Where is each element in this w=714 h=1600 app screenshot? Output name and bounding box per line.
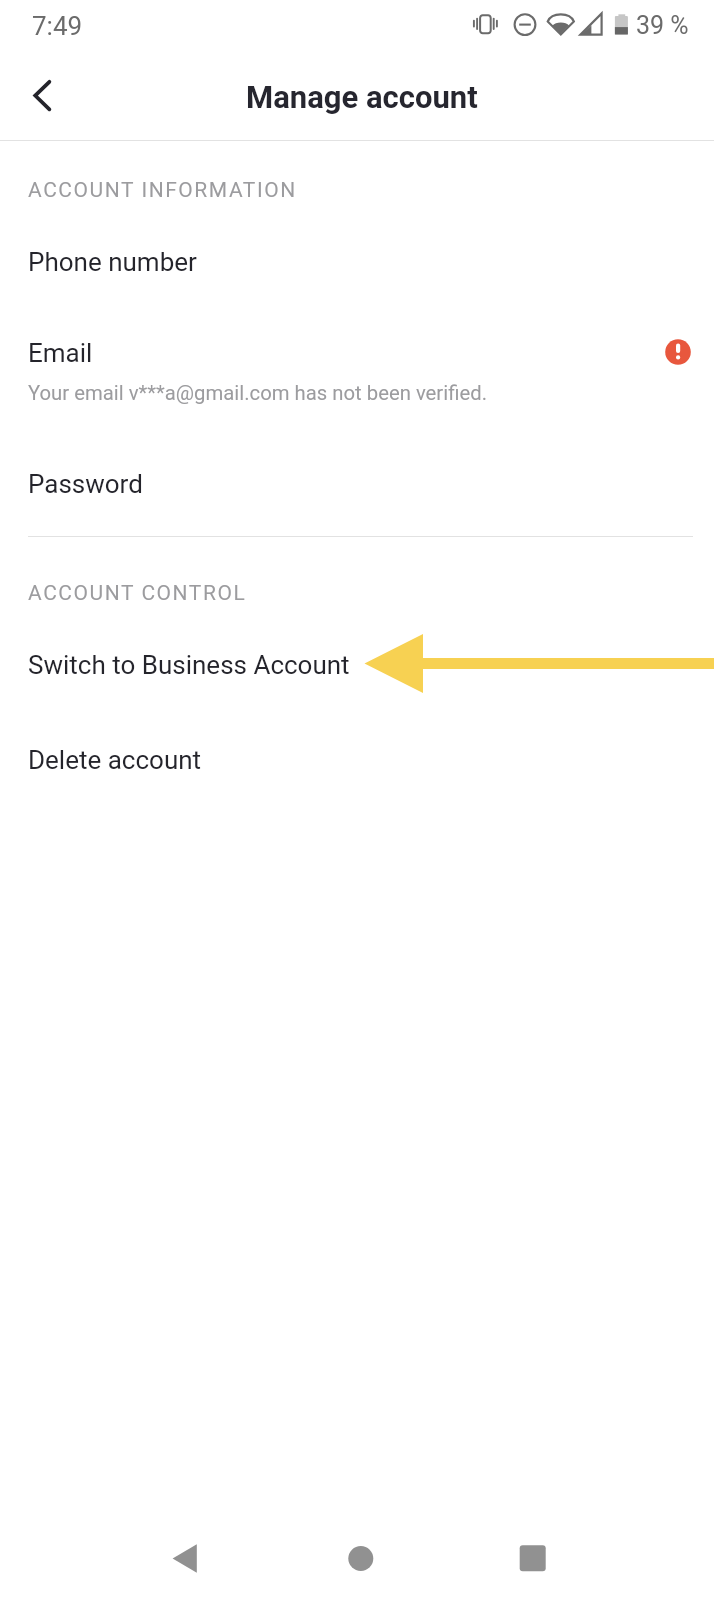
- button[interactable]: Password: [0, 437, 714, 511]
- staticText: Manage account: [246, 79, 478, 115]
- other: Not verified: [665, 339, 691, 365]
- staticText: 39 %: [636, 11, 689, 40]
- staticText: Switch to Business Account: [28, 650, 350, 680]
- button[interactable]: Delete account: [0, 713, 714, 787]
- staticText: Your email v***a@gmail.com has not been …: [28, 381, 487, 405]
- staticText: Phone number: [28, 247, 197, 277]
- button[interactable]: Back: [10, 56, 70, 122]
- staticText: Password: [28, 469, 143, 499]
- staticText: Email: [28, 338, 93, 368]
- button[interactable]: Switch to Business Account: [0, 618, 714, 692]
- button[interactable]: Back: [148, 1521, 222, 1595]
- button[interactable]: Phone number: [0, 215, 714, 289]
- button[interactable]: Home: [324, 1521, 398, 1595]
- staticText: ACCOUNT CONTROL: [28, 581, 247, 606]
- staticText: ACCOUNT INFORMATION: [28, 178, 297, 203]
- staticText: 7:49: [32, 11, 83, 41]
- staticText: Delete account: [28, 745, 202, 775]
- button[interactable]: Email: [0, 310, 714, 414]
- button[interactable]: Recent apps: [496, 1521, 570, 1595]
